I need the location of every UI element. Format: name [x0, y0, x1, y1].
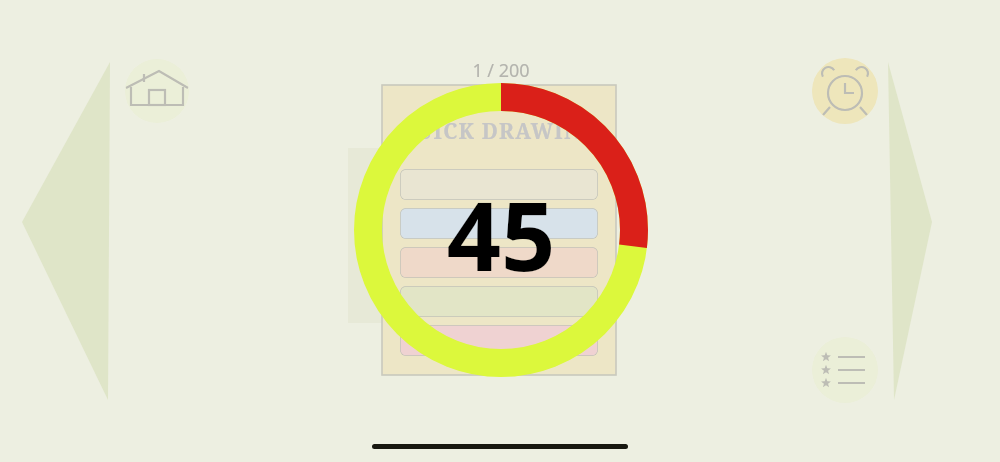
button[interactable] — [400, 208, 598, 239]
button[interactable]: Home — [125, 59, 189, 123]
staticText: 1 / 200 — [401, 58, 601, 84]
button[interactable] — [400, 325, 598, 356]
staticText: QUICK DRAWING — [382, 117, 616, 147]
button[interactable] — [400, 286, 598, 317]
button[interactable] — [400, 169, 598, 200]
button[interactable]: Alarm — [812, 58, 878, 124]
other: Timer progress — [354, 83, 648, 377]
button[interactable]: Favorites list — [812, 337, 878, 403]
button[interactable] — [400, 247, 598, 278]
staticText: 45 — [351, 169, 651, 289]
button[interactable]: QUICK DRAWING — [382, 85, 616, 375]
